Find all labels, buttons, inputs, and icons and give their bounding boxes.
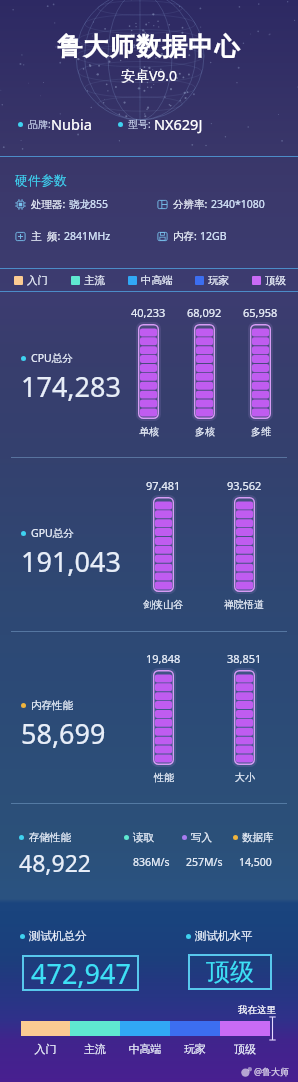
staticText: 主流 xyxy=(84,274,105,287)
staticText: 存储性能 xyxy=(29,831,71,844)
button[interactable]: 主 频: xyxy=(15,229,111,243)
staticText: Nubia xyxy=(51,114,92,134)
staticText: 58,699 xyxy=(21,715,106,752)
button[interactable]: 读取 xyxy=(124,831,161,869)
staticText: CPU总分 xyxy=(31,351,73,365)
staticText: 14,500 xyxy=(239,855,272,869)
staticText: 2340*1080 xyxy=(211,197,265,211)
staticText: 单核 xyxy=(139,425,159,438)
staticText: 中高端 xyxy=(141,274,173,287)
staticText: 顶级 xyxy=(265,274,286,287)
staticText: 174,283 xyxy=(21,368,121,405)
staticText: 读取 xyxy=(133,831,154,844)
button[interactable]: 数据库 xyxy=(233,831,274,869)
staticText: 40,233 xyxy=(131,305,166,320)
staticText: 入门 xyxy=(21,1042,70,1056)
staticText: 多维 xyxy=(251,425,271,438)
staticText: GPU总分 xyxy=(31,526,74,540)
staticText: 97,481 xyxy=(146,478,181,493)
staticText: 191,043 xyxy=(21,543,121,580)
staticText: 472,947 xyxy=(31,955,131,991)
staticText: 我在这里 xyxy=(0,1004,276,1016)
staticText: 入门 xyxy=(27,274,48,287)
staticText: 写入 xyxy=(191,831,212,844)
staticText: 中高端 xyxy=(120,1042,170,1056)
staticText: 处理器: xyxy=(31,197,69,211)
staticText: 骁龙855 xyxy=(69,197,109,211)
button[interactable]: 顶级 xyxy=(252,274,286,287)
staticText: 836M/s xyxy=(133,855,170,869)
staticText: 玩家 xyxy=(208,274,229,287)
staticText: 顶级 xyxy=(220,1042,270,1056)
button[interactable]: 分辨率: xyxy=(157,197,265,211)
staticText: 鲁大师数据中心 xyxy=(0,31,298,62)
staticText: 93,562 xyxy=(227,478,262,493)
staticText: 玩家 xyxy=(170,1042,220,1056)
staticText: 性能 xyxy=(154,771,174,784)
staticText: 型号: xyxy=(128,117,151,131)
staticText: 主 频: xyxy=(31,229,64,243)
button[interactable]: 中高端 xyxy=(128,274,173,287)
staticText: 大小 xyxy=(235,771,255,784)
staticText: @鲁大师 xyxy=(254,1065,290,1077)
staticText: 48,922 xyxy=(19,847,91,878)
staticText: 安卓V9.0 xyxy=(0,66,298,85)
staticText: 12GB xyxy=(200,229,227,243)
staticText: 数据库 xyxy=(242,831,274,844)
staticText: 19,848 xyxy=(146,651,181,666)
staticText: 品牌: xyxy=(28,117,51,131)
button[interactable]: 顶级 xyxy=(188,954,272,990)
staticText: 257M/s xyxy=(186,855,223,869)
staticText: NX629J xyxy=(154,114,203,134)
staticText: 测试机总分 xyxy=(29,929,87,943)
staticText: 禅院悟道 xyxy=(224,598,264,611)
staticText: 65,958 xyxy=(243,305,278,320)
button[interactable]: 玩家 xyxy=(195,274,229,287)
staticText: 多核 xyxy=(195,425,215,438)
button[interactable]: 处理器: xyxy=(15,197,109,211)
staticText: 测试机水平 xyxy=(195,929,253,943)
staticText: 内存性能 xyxy=(31,699,73,712)
button[interactable]: 主流 xyxy=(71,274,105,287)
staticText: 顶级 xyxy=(206,957,254,987)
button[interactable]: 写入 xyxy=(182,831,219,869)
staticText: 硬件参数 xyxy=(15,172,67,188)
staticText: 剑侠山谷 xyxy=(143,598,183,611)
staticText: 内存: xyxy=(173,229,200,243)
button[interactable]: 472,947 xyxy=(22,955,139,991)
staticText: 主流 xyxy=(70,1042,120,1056)
button[interactable]: 内存: xyxy=(157,229,227,243)
other: Weibo xyxy=(241,1066,252,1077)
staticText: 38,851 xyxy=(227,651,262,666)
staticText: 2841MHz xyxy=(64,229,111,243)
staticText: 分辨率: xyxy=(173,197,211,211)
button[interactable]: 入门 xyxy=(14,274,48,287)
staticText: 68,092 xyxy=(187,305,222,320)
